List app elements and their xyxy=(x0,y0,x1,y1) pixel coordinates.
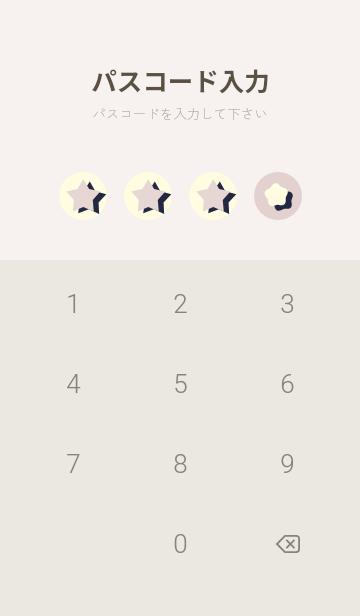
button[interactable]: 2 xyxy=(127,264,234,344)
staticText: 9 xyxy=(280,449,295,479)
button[interactable]: 4 xyxy=(20,344,127,424)
button[interactable]: Backspace xyxy=(234,504,341,584)
staticText: 2 xyxy=(173,289,188,319)
staticText: 1 xyxy=(66,289,81,319)
button[interactable]: 9 xyxy=(234,424,341,504)
button[interactable]: 7 xyxy=(20,424,127,504)
button[interactable]: 1 xyxy=(20,264,127,344)
staticText: 7 xyxy=(66,449,81,479)
staticText: パスコード入力 xyxy=(91,61,270,98)
staticText: 0 xyxy=(173,529,188,559)
button[interactable]: 3 xyxy=(234,264,341,344)
button[interactable]: 8 xyxy=(127,424,234,504)
staticText: パスコードを入力して下さい xyxy=(92,103,268,123)
staticText: 5 xyxy=(173,369,188,399)
staticText: 4 xyxy=(66,369,81,399)
staticText: 8 xyxy=(173,449,188,479)
staticText: 3 xyxy=(280,289,295,319)
button[interactable]: 5 xyxy=(127,344,234,424)
button[interactable]: 6 xyxy=(234,344,341,424)
staticText: 6 xyxy=(280,369,295,399)
button[interactable]: 0 xyxy=(127,504,234,584)
